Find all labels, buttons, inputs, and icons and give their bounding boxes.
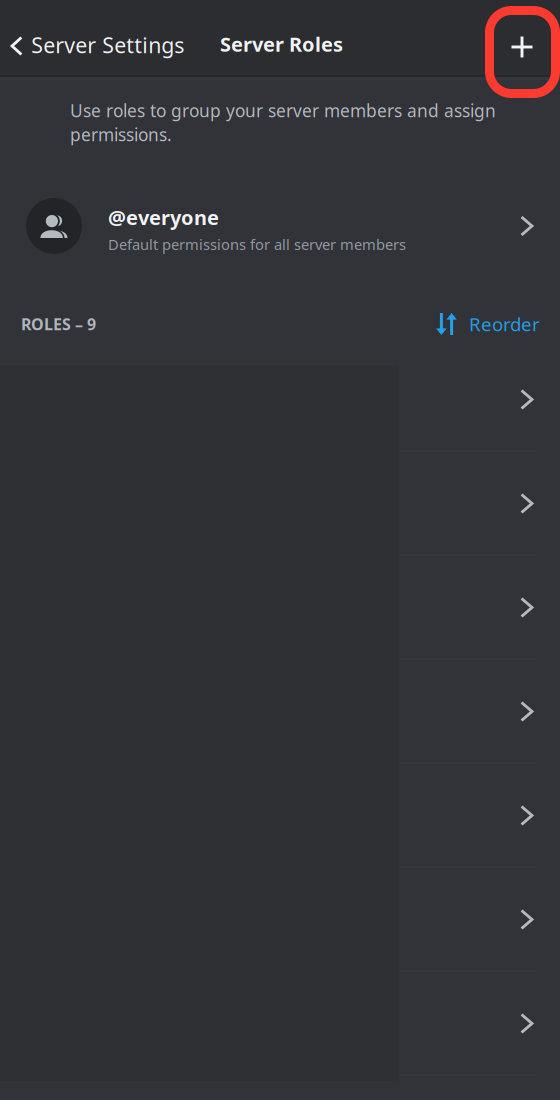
button[interactable] (0, 452, 560, 556)
staticText: ROLES – 9 (21, 313, 96, 335)
button[interactable] (0, 348, 560, 452)
button[interactable]: @everyone (0, 184, 560, 268)
staticText: Server Settings (31, 31, 184, 59)
staticText: Reorder (469, 312, 540, 336)
button[interactable] (0, 556, 560, 660)
button[interactable] (0, 764, 560, 868)
button[interactable]: Reorder (436, 300, 560, 348)
staticText: @everyone (108, 204, 219, 231)
staticText: Use roles to group your server members a… (70, 99, 496, 122)
button[interactable]: Server Settings (0, 23, 194, 67)
button[interactable] (0, 660, 560, 764)
button[interactable] (0, 972, 560, 1076)
button[interactable]: Create Role (490, 25, 554, 69)
staticText: Server Roles (220, 31, 343, 57)
button[interactable] (0, 868, 560, 972)
staticText: Default permissions for all server membe… (108, 234, 406, 254)
staticText: permissions. (70, 123, 172, 146)
